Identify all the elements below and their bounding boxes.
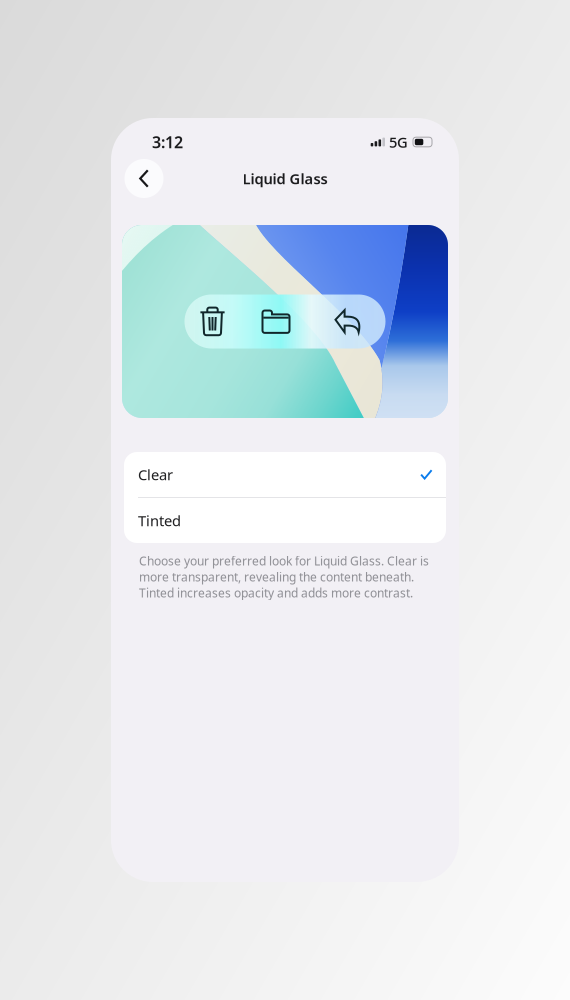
button[interactable]: Clear: [124, 452, 446, 497]
staticText: Clear: [138, 465, 173, 484]
staticText: 3:12: [152, 131, 183, 153]
button[interactable]: Reply: [311, 294, 385, 348]
button[interactable]: Move to folder: [240, 294, 311, 348]
button[interactable]: Back: [124, 159, 163, 198]
staticText: 5G: [389, 132, 408, 152]
staticText: Choose your preferred look for Liquid Gl…: [139, 553, 429, 601]
button[interactable]: Tinted: [124, 498, 446, 543]
staticText: Tinted: [138, 511, 181, 530]
button[interactable]: Delete: [184, 294, 240, 348]
staticText: Liquid Glass: [242, 169, 327, 188]
